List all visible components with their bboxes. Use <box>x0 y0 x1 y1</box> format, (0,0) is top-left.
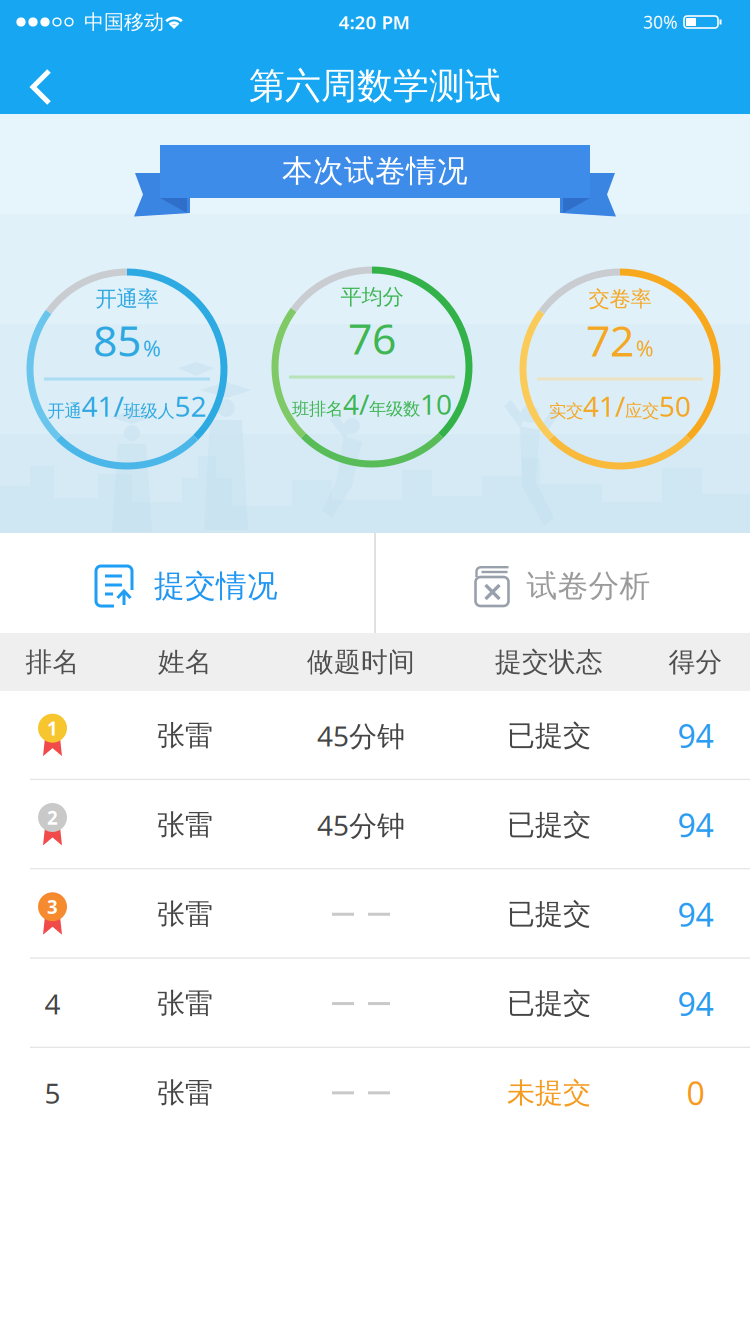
staticText: 提交情况 <box>154 567 278 605</box>
staticText: 得分 <box>668 646 722 678</box>
staticText: 94 <box>677 893 713 935</box>
staticText: 中国移动 <box>84 10 164 34</box>
staticText: 2 <box>47 805 58 830</box>
button[interactable]: 试卷分析 <box>376 533 749 633</box>
staticText: 应交 <box>625 400 659 422</box>
staticText: 张雷 <box>157 808 213 842</box>
staticText: 4 <box>44 985 60 1022</box>
staticText: 52 <box>174 387 206 425</box>
staticText: 第六周数学测试 <box>249 64 501 108</box>
staticText: 开通 <box>47 400 81 422</box>
staticText: 姓名 <box>158 646 212 678</box>
staticText: 0 <box>686 1072 704 1114</box>
staticText: 50 <box>659 387 691 425</box>
staticText: 3 <box>47 894 58 919</box>
staticText: 提交状态 <box>495 646 603 678</box>
staticText: 4/ <box>343 385 369 423</box>
staticText: 实交 <box>549 400 583 422</box>
staticText: 30% <box>643 10 677 33</box>
button[interactable]: 提交情况 <box>0 533 374 633</box>
staticText: 4:20 PM <box>338 10 409 34</box>
staticText: 张雷 <box>157 718 213 753</box>
staticText: 张雷 <box>157 1076 213 1110</box>
staticText: 1 <box>47 716 58 741</box>
staticText: 班排名 <box>292 398 343 420</box>
staticText: 未提交 <box>507 1076 591 1110</box>
button[interactable]: Back <box>11 57 71 117</box>
staticText: 94 <box>677 714 713 757</box>
staticText: 开通率 <box>95 286 158 312</box>
staticText: 张雷 <box>157 897 213 931</box>
staticText: 94 <box>677 982 713 1025</box>
staticText: 已提交 <box>507 986 591 1021</box>
staticText: 做题时间 <box>307 646 415 678</box>
staticText: 张雷 <box>157 986 213 1021</box>
staticText: % <box>143 334 161 362</box>
staticText: 72 <box>586 312 634 368</box>
staticText: 85 <box>93 312 141 368</box>
staticText: 排名 <box>25 646 79 678</box>
staticText: 已提交 <box>507 808 591 842</box>
staticText: 10 <box>420 385 452 423</box>
staticText: 平均分 <box>340 284 403 310</box>
staticText: 本次试卷情况 <box>282 152 468 190</box>
staticText: 5 <box>44 1074 60 1111</box>
staticText: % <box>636 334 654 362</box>
staticText: 45分钟 <box>317 717 405 754</box>
staticText: 94 <box>677 804 713 846</box>
staticText: 交卷率 <box>588 286 651 312</box>
staticText: 试卷分析 <box>526 567 650 605</box>
staticText: 已提交 <box>507 718 591 753</box>
staticText: 班级人 <box>123 400 174 422</box>
staticText: 41/ <box>583 387 625 425</box>
staticText: 已提交 <box>507 897 591 931</box>
staticText: 45分钟 <box>317 806 405 844</box>
staticText: 76 <box>348 310 396 366</box>
staticText: 年级数 <box>369 398 420 420</box>
staticText: 41/ <box>81 387 123 425</box>
